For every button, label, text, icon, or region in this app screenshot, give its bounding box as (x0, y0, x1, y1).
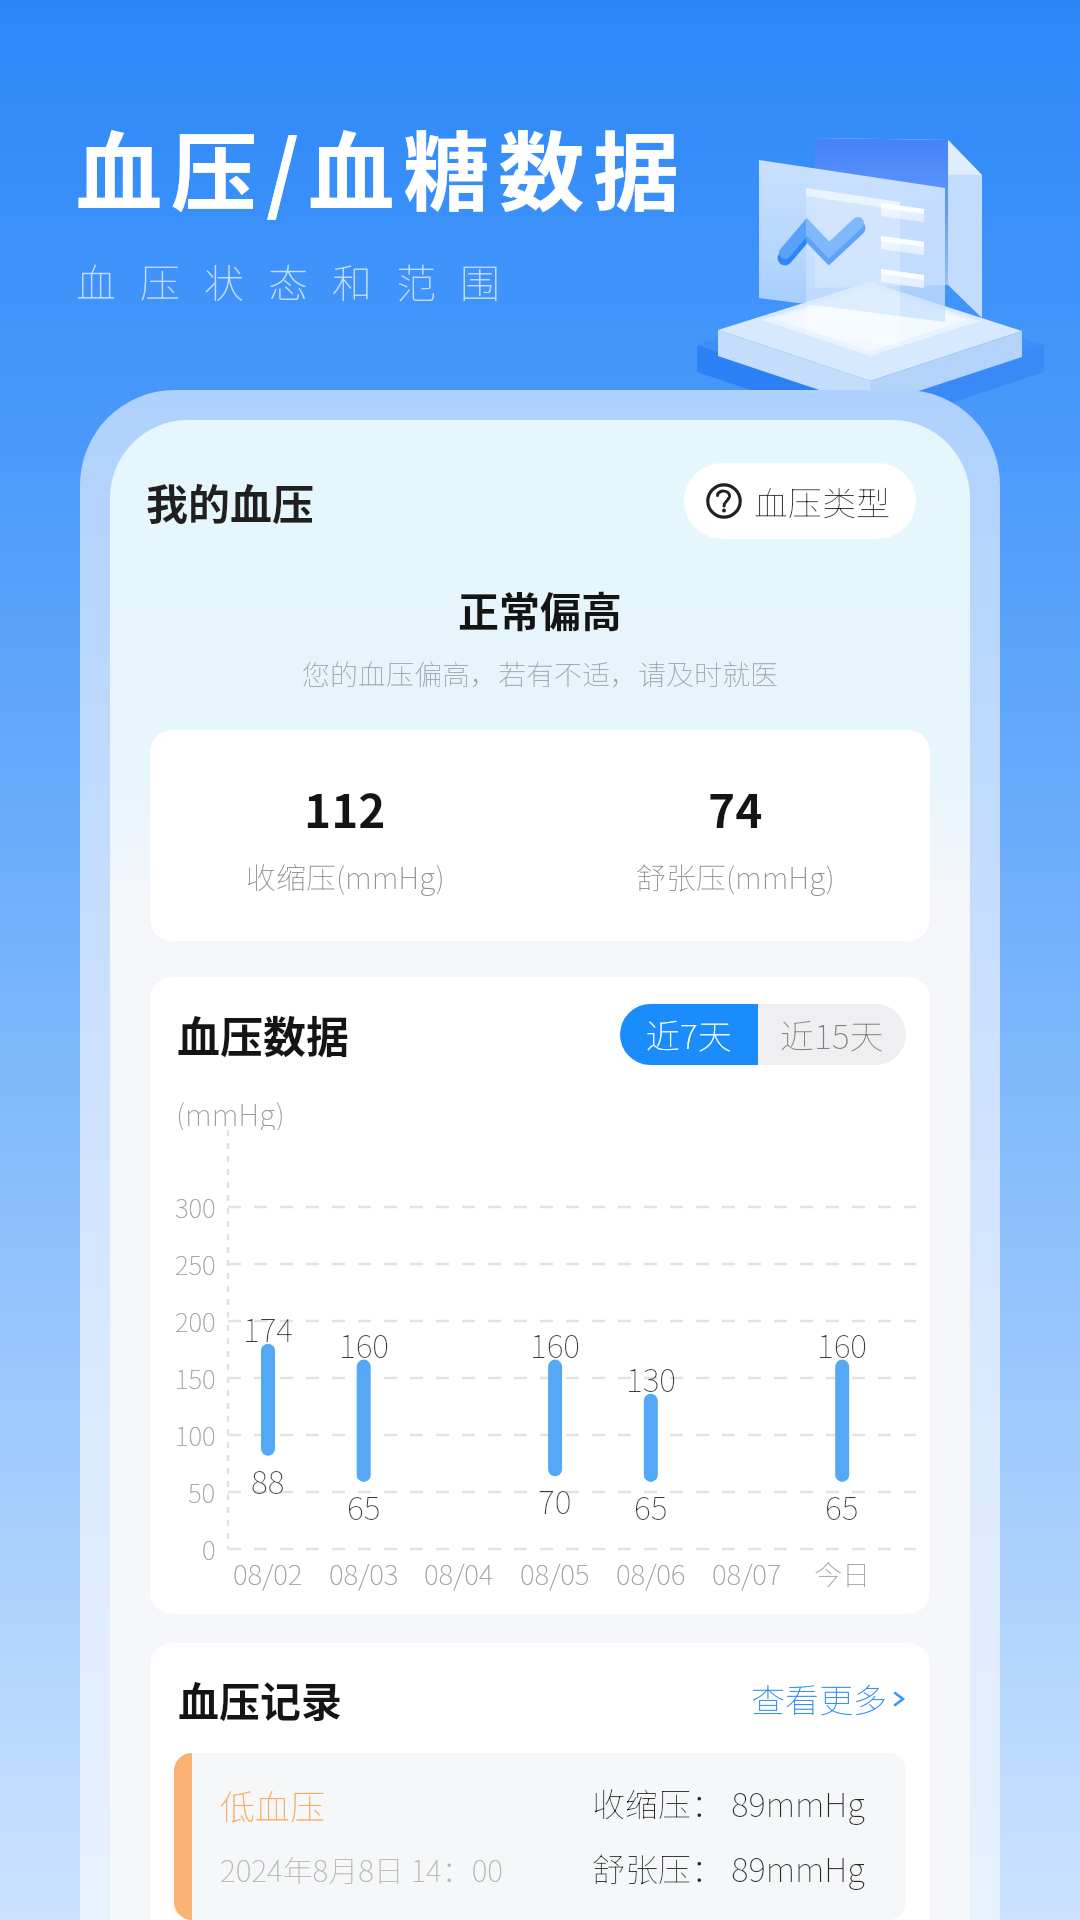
staticText: 今日 (814, 1553, 871, 1594)
staticText: 200 (175, 1302, 216, 1340)
staticText: 您的血压偏高，若有不适，请及时就医 (110, 653, 970, 694)
staticText: 0 (202, 1530, 216, 1568)
staticText: 65 (347, 1483, 381, 1529)
staticText: 08/07 (712, 1553, 782, 1594)
staticText: 50 (188, 1473, 216, 1511)
staticText: 血压类型 (754, 477, 890, 526)
staticText: 08/04 (424, 1553, 494, 1594)
staticText: 近15天 (780, 1010, 884, 1059)
staticText: 血压状态和范围 (76, 252, 524, 310)
staticText: 08/03 (329, 1553, 399, 1594)
staticText: 300 (175, 1188, 216, 1226)
button[interactable]: 血压类型说明 (684, 463, 916, 539)
staticText: 舒张压(mmHg) (636, 854, 835, 897)
staticText: 174 (243, 1305, 294, 1351)
staticText: 血压/血糖数据 (76, 104, 689, 229)
button[interactable]: 查看更多 (747, 1664, 910, 1733)
staticText: 低血压 (220, 1779, 326, 1830)
staticText: 近7天 (646, 1010, 732, 1059)
staticText: 160 (817, 1321, 868, 1367)
staticText: 70 (538, 1477, 572, 1523)
staticText: 血压数据 (177, 1003, 349, 1065)
staticText: 150 (175, 1359, 216, 1397)
staticText: 88 (251, 1457, 285, 1503)
staticText: 我的血压 (146, 471, 315, 532)
staticText: 收缩压(mmHg) (246, 854, 445, 897)
staticText: 112 (304, 775, 386, 842)
staticText: 100 (175, 1416, 216, 1454)
staticText: 65 (825, 1483, 859, 1529)
button[interactable]: 低血压 (174, 1753, 906, 1920)
staticText: 160 (339, 1321, 390, 1367)
staticText: 250 (175, 1245, 216, 1283)
staticText: 130 (626, 1355, 677, 1401)
staticText: 舒张压： 89mmHg (592, 1844, 865, 1892)
staticText: 血压记录 (178, 1669, 342, 1728)
staticText: 正常偏高 (110, 579, 970, 638)
button[interactable]: 近15天 (758, 1004, 906, 1065)
staticText: 65 (634, 1483, 668, 1529)
staticText: 74 (708, 775, 763, 842)
staticText: 08/02 (233, 1553, 303, 1594)
staticText: 收缩压： 89mmHg (592, 1779, 865, 1827)
staticText: 2024年8月8日 14：00 (220, 1847, 503, 1890)
button[interactable]: 近7天 (620, 1004, 758, 1065)
staticText: 查看更多 (751, 1674, 887, 1723)
staticText: (mmHg) (176, 1091, 930, 1130)
staticText: 08/05 (520, 1553, 590, 1594)
staticText: 08/06 (616, 1553, 686, 1594)
staticText: 160 (530, 1321, 581, 1367)
